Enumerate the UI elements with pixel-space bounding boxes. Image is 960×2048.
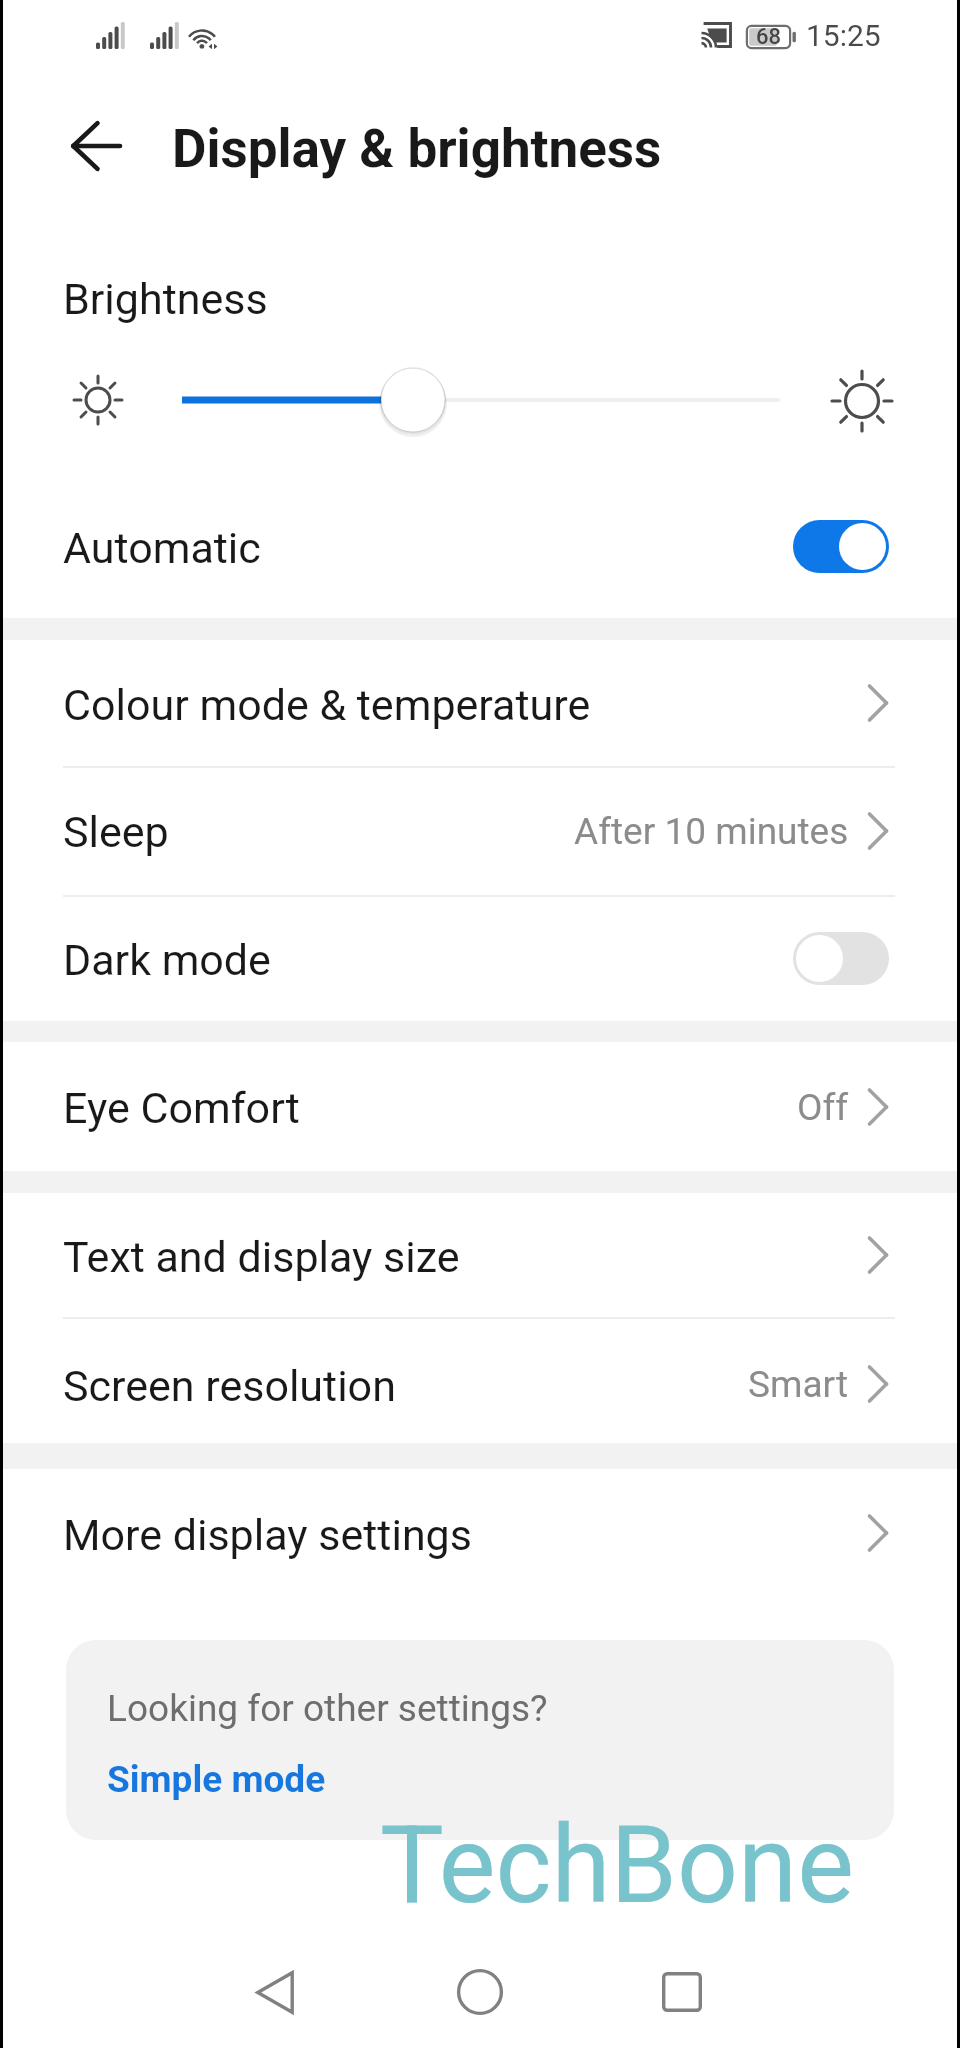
staticText: Dark mode	[63, 935, 271, 985]
staticText: Simple mode	[107, 1758, 326, 1801]
button[interactable]: More display settings	[0, 1469, 960, 1597]
button[interactable]: Back	[220, 1937, 330, 2047]
staticText: Off	[797, 1086, 849, 1129]
staticText: 68	[756, 24, 782, 50]
staticText: Display & brightness	[172, 118, 662, 180]
staticText: Sleep	[63, 807, 169, 857]
button[interactable]: Back	[53, 103, 139, 189]
staticText: Colour mode & temperature	[63, 680, 591, 730]
staticText: 15:25	[806, 18, 881, 53]
button[interactable]: Colour mode & temperature	[0, 640, 960, 766]
button[interactable]: Switch off	[793, 932, 889, 985]
staticText: Eye Comfort	[63, 1083, 300, 1133]
staticText: Looking for other settings?	[107, 1687, 548, 1730]
staticText: Screen resolution	[63, 1361, 396, 1411]
staticText: Smart	[748, 1363, 849, 1406]
staticText: Brightness	[63, 274, 268, 324]
button[interactable]: Recents	[627, 1937, 737, 2047]
staticText: After 10 minutes	[574, 810, 849, 853]
button[interactable]: Switch on	[793, 520, 889, 573]
button[interactable]: Home	[425, 1937, 535, 2047]
button[interactable]: Text and display size	[0, 1193, 960, 1317]
button[interactable]: Looking for other settings?	[66, 1640, 894, 1840]
button[interactable]: Screen resolution	[0, 1317, 960, 1443]
button[interactable]: Sleep	[0, 766, 960, 895]
button[interactable]: Eye Comfort	[0, 1042, 960, 1171]
staticText: TechBone	[380, 1803, 854, 1928]
staticText: More display settings	[63, 1510, 472, 1560]
staticText: Automatic	[63, 523, 261, 573]
staticText: Text and display size	[63, 1232, 460, 1282]
button[interactable]: Dark mode	[0, 895, 960, 1021]
